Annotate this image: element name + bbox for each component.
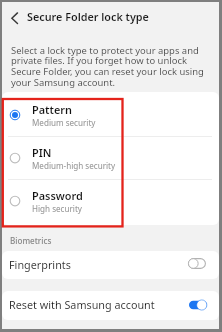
- staticText: Fingerprints: [9, 257, 71, 272]
- button[interactable]: Password: [2, 180, 219, 222]
- staticText: PIN: [32, 145, 52, 160]
- button[interactable]: Reset with Samsung account on: [189, 300, 207, 310]
- staticText: Reset with Samsung account: [9, 297, 155, 312]
- staticText: Password: [32, 188, 83, 203]
- staticText: Select a lock type to protect your apps …: [11, 44, 204, 89]
- staticText: Biometrics: [10, 235, 52, 246]
- button[interactable]: Pattern: [2, 94, 219, 136]
- staticText: High security: [32, 203, 82, 214]
- staticText: Secure Folder lock type: [27, 9, 149, 24]
- staticText: Medium-high security: [32, 160, 116, 171]
- staticText: Medium security: [32, 117, 96, 128]
- button[interactable]: Back: [3, 5, 27, 29]
- button[interactable]: PIN: [2, 137, 219, 179]
- button[interactable]: Fingerprints off: [188, 258, 206, 269]
- button[interactable]: Fingerprints: [2, 251, 219, 279]
- staticText: Pattern: [32, 102, 72, 117]
- button[interactable]: Reset with Samsung account: [2, 291, 219, 320]
